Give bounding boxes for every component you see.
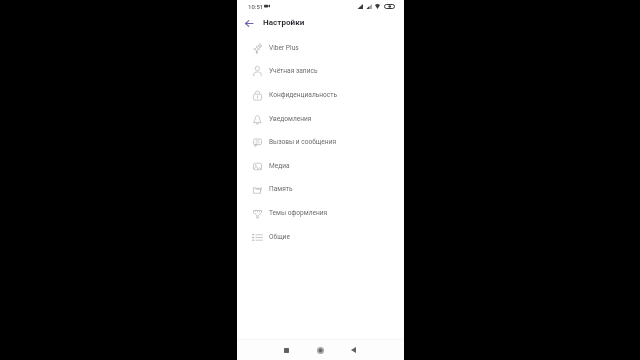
button[interactable]: Темы оформления: [237, 201, 404, 225]
staticText: Темы оформления: [269, 209, 328, 217]
button[interactable]: Viber Plus: [237, 36, 404, 60]
staticText: Viber Plus: [269, 44, 299, 52]
staticText: Уведомления: [269, 115, 312, 123]
staticText: Конфиденциальность: [269, 91, 338, 99]
staticText: Общие: [269, 233, 290, 241]
button[interactable]: Back: [240, 14, 258, 32]
staticText: 10:51: [248, 3, 264, 10]
staticText: Память: [269, 185, 293, 193]
button[interactable]: Back: [342, 340, 364, 360]
button[interactable]: Вызовы и сообщения: [237, 130, 404, 154]
staticText: Настройки: [263, 17, 305, 26]
button[interactable]: Конфиденциальность: [237, 83, 404, 107]
button[interactable]: Учётная запись: [237, 59, 404, 83]
button[interactable]: Home: [309, 340, 331, 360]
button[interactable]: Память: [237, 177, 404, 201]
button[interactable]: Медиа: [237, 154, 404, 178]
staticText: Вызовы и сообщения: [269, 138, 337, 146]
staticText: Учётная запись: [269, 67, 318, 75]
staticText: Медиа: [269, 162, 290, 170]
button[interactable]: Общие: [237, 225, 404, 249]
button[interactable]: Recent apps: [275, 340, 297, 360]
button[interactable]: Уведомления: [237, 107, 404, 131]
